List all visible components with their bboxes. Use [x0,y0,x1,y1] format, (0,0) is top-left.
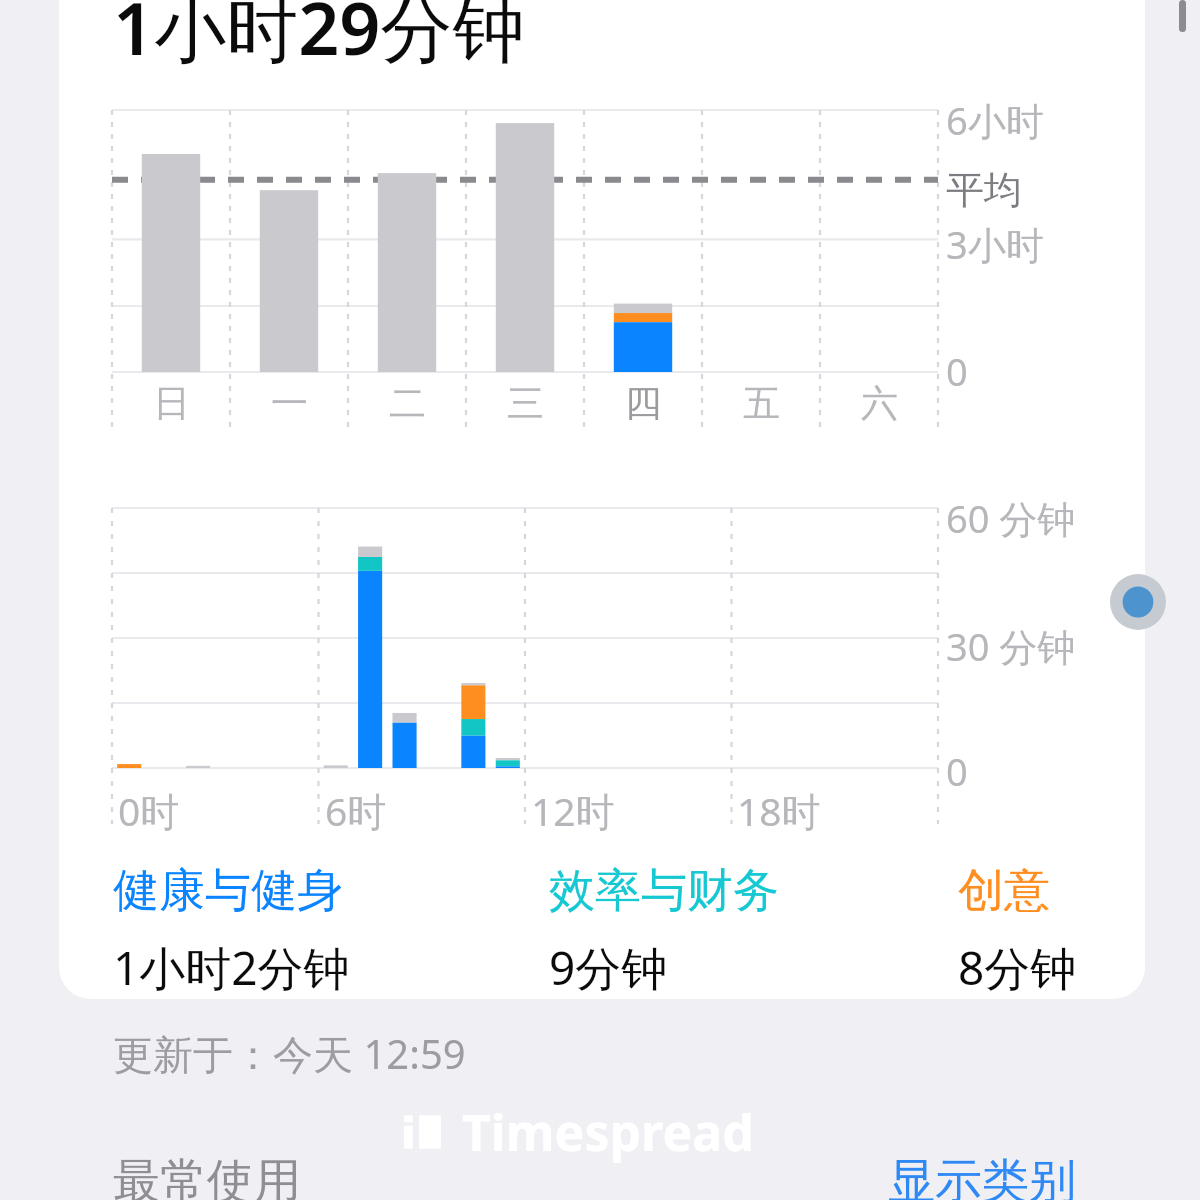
staticText: 18时 [737,784,821,837]
staticText: Timespread [462,1098,754,1166]
staticText: 0 [946,745,968,797]
button[interactable]: 最常使用 [113,1152,301,1200]
staticText: 四 [625,380,662,427]
staticText: 六 [861,380,898,427]
staticText: 平均 [946,166,1022,214]
staticText: 6小时 [946,94,1044,146]
staticText: 日 [153,380,190,427]
staticText: 显示类别 [888,1152,1076,1200]
button[interactable]: 效率与财务 [549,862,779,999]
staticText: 9分钟 [549,936,668,999]
staticText: 效率与财务 [549,862,779,920]
staticText: 二 [389,380,426,427]
staticText: 创意 [958,862,1050,920]
staticText: 3小时 [946,218,1044,270]
button[interactable]: 显示类别 [888,1152,1076,1200]
staticText: 12时 [531,784,615,837]
staticText: 健康与健身 [113,862,343,920]
staticText: 五 [743,380,780,427]
button[interactable]: 健康与健身 [113,862,350,999]
staticText: 更新于：今天 12:59 [113,1026,466,1081]
staticText: 6时 [325,784,387,837]
staticText: 1小时29分钟 [113,0,525,76]
staticText: 60 分钟 [946,492,1076,544]
staticText: 8分钟 [958,936,1077,999]
staticText: 0 [946,345,968,397]
button[interactable]: Scroll position [1110,574,1166,630]
staticText: 最常使用 [113,1152,301,1200]
button[interactable]: 创意 [958,862,1077,999]
staticText: 1小时2分钟 [113,936,350,999]
staticText: 0时 [118,784,180,837]
staticText: 三 [507,380,544,427]
staticText: 30 分钟 [946,620,1076,672]
staticText: 一 [271,380,308,427]
